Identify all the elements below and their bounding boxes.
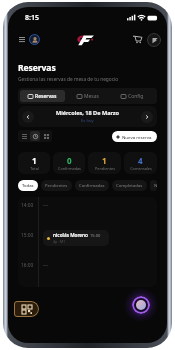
button[interactable]: No asi [150,180,157,191]
staticText: Pendientes [45,183,68,189]
button[interactable]: Nueva reserva [112,131,157,142]
staticText: 1 [32,155,37,166]
button[interactable]: List view [19,131,29,141]
staticText: 4 [138,155,143,166]
staticText: 1 [102,155,107,166]
button[interactable]: Config [110,90,155,102]
button[interactable]: Previous day [22,111,34,123]
button[interactable]: Menu [14,32,29,47]
staticText: Config [128,93,144,100]
button[interactable]: Completadas [112,180,147,191]
button[interactable]: Confirmadas [75,180,109,191]
staticText: Completadas [116,183,143,189]
staticText: Reservas [35,93,57,100]
button[interactable]: Grid view [41,131,51,141]
button[interactable]: Timeline view [30,131,40,141]
staticText: Total [30,166,39,171]
staticText: Mesas [84,93,99,100]
button[interactable]: Assistant [147,33,161,47]
button[interactable]: 4 [124,152,157,174]
button[interactable]: 1 [18,152,50,174]
staticText: 16:00 [21,262,34,269]
staticText: 8:15 [25,13,39,23]
staticText: Nueva reserva [122,134,152,140]
button[interactable]: Cart [130,32,145,47]
button[interactable]: AI assistant [132,296,150,314]
button[interactable]: Todas [18,180,38,191]
staticText: 4p · M1 [53,239,66,244]
staticText: nicolás Moreno [53,232,88,238]
button[interactable]: Mesas [65,90,110,102]
staticText: Pendientes [95,166,115,171]
button[interactable]: 0 [53,152,85,174]
staticText: Reservas [18,62,56,74]
staticText: Gestiona las reservas de mesa de tu nego… [18,76,119,83]
staticText: Todas [22,183,34,189]
button[interactable]: Pendientes [41,180,72,191]
staticText: 15:00 [90,233,101,238]
button[interactable]: Next day [141,111,153,123]
button[interactable]: Reservas [20,90,65,102]
staticText: 14:00 [21,202,34,209]
staticText: 0 [67,155,72,166]
button[interactable]: QR code [14,301,39,317]
staticText: Confirmadas [58,166,81,171]
button[interactable]: nicolás Moreno [43,230,109,246]
staticText: Confirmadas [79,183,105,189]
staticText: 15:00 [21,232,34,239]
button[interactable]: Profile [29,34,40,45]
staticText: Es hoy [81,118,94,124]
button[interactable]: 1 [88,152,121,174]
staticText: Comensales [130,166,152,171]
staticText: Miércoles, 18 De Marzo [56,109,119,117]
